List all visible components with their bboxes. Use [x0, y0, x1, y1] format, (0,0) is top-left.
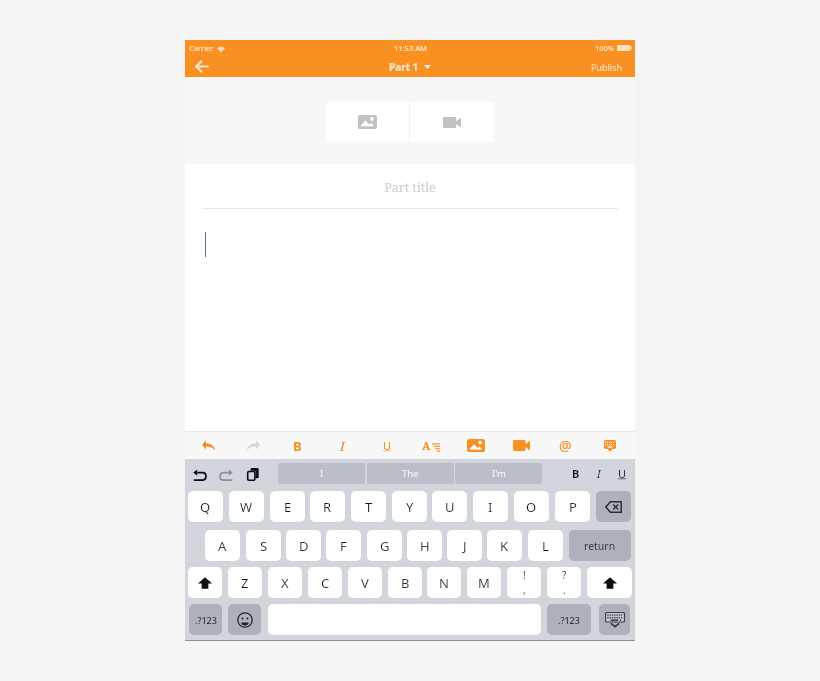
staticText: G: [380, 537, 390, 555]
button[interactable]: I: [591, 464, 607, 483]
button[interactable]: Backspace: [596, 491, 631, 522]
button[interactable]: V: [348, 567, 382, 598]
button[interactable]: Hide keyboard: [599, 604, 630, 635]
staticText: P: [569, 498, 577, 516]
staticText: X: [281, 574, 289, 592]
staticText: B: [401, 574, 410, 592]
staticText: R: [323, 498, 332, 516]
button[interactable]: Bold: [282, 432, 312, 459]
button[interactable]: U: [614, 464, 630, 483]
button[interactable]: .?123: [189, 604, 222, 635]
staticText: I: [320, 467, 324, 480]
button[interactable]: Z: [228, 567, 262, 598]
staticText: I: [340, 437, 345, 455]
staticText: ,: [523, 583, 526, 597]
staticText: @: [559, 436, 572, 455]
staticText: V: [361, 574, 369, 592]
button[interactable]: T: [351, 491, 386, 522]
button[interactable]: Paste: [247, 468, 260, 481]
button[interactable]: Part 1: [389, 56, 431, 77]
staticText: Q: [200, 498, 211, 516]
staticText: C: [321, 574, 330, 592]
button[interactable]: C: [308, 567, 342, 598]
button[interactable]: O: [514, 491, 549, 522]
button[interactable]: Redo: [238, 432, 268, 459]
button[interactable]: D: [286, 530, 321, 561]
button[interactable]: J: [447, 530, 482, 561]
button[interactable]: .?123: [547, 604, 591, 635]
staticText: O: [526, 498, 537, 516]
button[interactable]: return: [569, 530, 631, 561]
staticText: The: [402, 467, 419, 480]
staticText: !: [523, 568, 526, 582]
button[interactable]: E: [270, 491, 305, 522]
button[interactable]: Emoji: [228, 604, 261, 635]
button[interactable]: G: [367, 530, 402, 561]
button[interactable]: Publish: [591, 56, 623, 77]
button[interactable]: R: [310, 491, 345, 522]
button[interactable]: Back: [191, 56, 211, 77]
staticText: K: [500, 537, 509, 555]
staticText: U: [383, 438, 392, 453]
button[interactable]: I: [473, 491, 508, 522]
staticText: F: [340, 537, 347, 555]
staticText: ?: [562, 568, 567, 582]
button[interactable]: N: [427, 567, 461, 598]
button[interactable]: Hide keyboard: [595, 432, 625, 459]
button[interactable]: Underline: [372, 432, 402, 459]
staticText: U: [445, 498, 455, 516]
button[interactable]: K: [487, 530, 522, 561]
staticText: E: [284, 498, 292, 516]
staticText: return: [584, 539, 616, 553]
button[interactable]: B: [388, 567, 422, 598]
button[interactable]: Add video: [410, 102, 494, 142]
button[interactable]: Shift: [188, 567, 222, 598]
button[interactable]: Redo: [219, 469, 233, 481]
button[interactable]: Question mark: [547, 567, 581, 598]
staticText: .?123: [558, 614, 580, 626]
staticText: .: [563, 583, 566, 597]
button[interactable]: S: [246, 530, 281, 561]
button[interactable]: The: [367, 463, 454, 484]
button[interactable]: Q: [188, 491, 223, 522]
button[interactable]: Shift: [587, 567, 632, 598]
button[interactable]: H: [407, 530, 442, 561]
staticText: H: [420, 537, 430, 555]
staticText: W: [240, 498, 253, 516]
button[interactable]: I'm: [455, 463, 542, 484]
staticText: 100%: [595, 43, 615, 53]
staticText: I: [488, 498, 493, 516]
staticText: I'm: [492, 467, 506, 480]
staticText: L: [542, 537, 549, 555]
button[interactable]: L: [528, 530, 563, 561]
staticText: I: [597, 466, 601, 481]
staticText: Z: [241, 574, 249, 592]
button[interactable]: Add image: [326, 102, 409, 142]
staticText: B: [293, 437, 302, 455]
button[interactable]: Undo: [193, 469, 207, 481]
button[interactable]: Paragraph style: [416, 432, 446, 459]
button[interactable]: P: [555, 491, 590, 522]
staticText: U: [618, 466, 627, 481]
button[interactable]: Insert image: [461, 432, 491, 459]
button[interactable]: Insert video: [506, 432, 536, 459]
staticText: A: [218, 537, 227, 555]
button[interactable]: Y: [392, 491, 427, 522]
button[interactable]: Exclamation mark: [507, 567, 541, 598]
staticText: J: [463, 537, 467, 555]
button[interactable]: X: [268, 567, 302, 598]
button[interactable]: F: [326, 530, 361, 561]
button[interactable]: B: [568, 464, 584, 483]
staticText: Part title: [185, 179, 635, 196]
button[interactable]: W: [229, 491, 264, 522]
button[interactable]: A: [205, 530, 240, 561]
button[interactable]: Undo: [193, 432, 223, 459]
button[interactable]: Mention: [550, 432, 580, 459]
staticText: A: [422, 438, 431, 453]
button[interactable]: I: [278, 463, 365, 484]
button[interactable]: U: [432, 491, 467, 522]
button[interactable]: M: [467, 567, 501, 598]
staticText: M: [478, 574, 490, 592]
button[interactable]: Italic: [327, 432, 357, 459]
